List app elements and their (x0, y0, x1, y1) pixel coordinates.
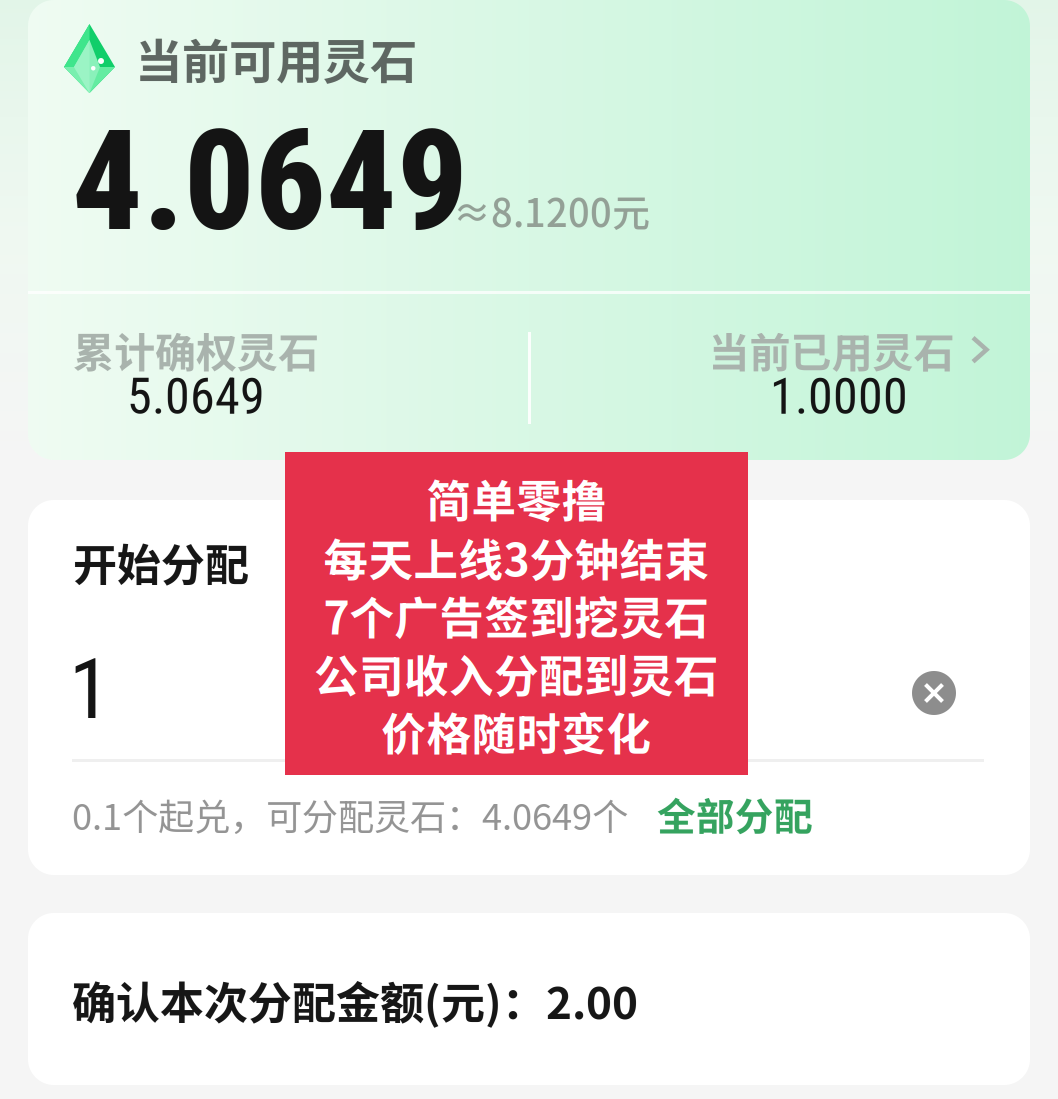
staticText: 0.1个起兑，可分配灵石：4.0649个 (72, 788, 628, 840)
staticText: 开始分配 (73, 530, 249, 594)
staticText: 1 (69, 640, 110, 738)
staticText: 7个广告签到挖灵石 (323, 583, 709, 647)
staticText: 当前可用灵石 (135, 24, 417, 93)
staticText: 当前已用灵石 (708, 320, 954, 379)
staticText: 4.0649 (72, 100, 468, 263)
staticText: 5.0649 (127, 367, 265, 426)
staticText: 每天上线3分钟结束 (323, 525, 709, 589)
staticText: 全部分配 (657, 786, 813, 842)
staticText: 简单零撸 (426, 466, 606, 530)
button[interactable]: 全部分配 (643, 778, 827, 850)
button[interactable]: 当前已用灵石 (629, 320, 1058, 446)
staticText: ≈8.1200元 (453, 183, 650, 238)
staticText: 累计确权灵石 (73, 320, 319, 379)
staticText: 价格随时变化 (381, 699, 651, 763)
button[interactable]: Clear amount (904, 663, 964, 723)
staticText: 公司收入分配到灵石 (314, 641, 719, 705)
staticText: 确认本次分配金额(元)：2.00 (72, 968, 638, 1032)
staticText: 1.0000 (770, 367, 908, 426)
